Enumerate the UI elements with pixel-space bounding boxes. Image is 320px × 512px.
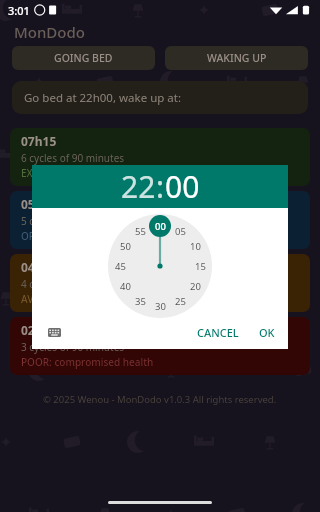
staticText: 10	[190, 240, 201, 253]
staticText: Go bed at 22h00, wake up at:	[24, 90, 181, 106]
staticText: © 2025 Wenou - MonDodo v1.0.3 All rights…	[43, 393, 277, 406]
button[interactable]: 22	[121, 166, 156, 207]
staticText: 35	[135, 295, 146, 308]
staticText: 40	[120, 280, 131, 293]
button[interactable]: WAKING UP	[165, 46, 308, 70]
button[interactable]: 00	[165, 166, 200, 207]
button[interactable]: 00	[108, 214, 212, 318]
staticText: 30	[155, 300, 166, 313]
button[interactable]: 07h15	[10, 128, 310, 186]
staticText: 50	[120, 240, 131, 253]
staticText: 20	[190, 280, 201, 293]
staticText: 4 cycles of 90 minutes	[21, 277, 125, 291]
staticText: 55	[135, 225, 146, 238]
staticText: AVERAGE	[21, 292, 65, 306]
staticText: 3:01	[8, 3, 30, 18]
staticText: 02h45	[21, 322, 57, 338]
staticText: OPTIMAL	[21, 229, 66, 243]
staticText: 05h45	[21, 196, 57, 212]
staticText: 22	[121, 166, 156, 207]
staticText: 25	[175, 295, 186, 308]
button[interactable]: OK	[256, 322, 278, 343]
button[interactable]: Go bed at 22h00, wake up at:	[12, 81, 308, 114]
staticText: CANCEL	[197, 325, 239, 340]
staticText: GOING BED	[54, 51, 113, 65]
staticText: 45	[115, 260, 126, 273]
staticText: 15	[195, 260, 206, 273]
staticText: MonDodo	[14, 22, 85, 42]
staticText: POOR: compromised health	[21, 355, 154, 369]
staticText: 5 cycles of 90 minutes	[21, 214, 125, 228]
staticText: OK	[259, 325, 275, 340]
button[interactable]: GOING BED	[12, 46, 155, 70]
staticText: 00	[155, 220, 166, 233]
staticText: WAKING UP	[207, 51, 267, 65]
button[interactable]: 04h15	[10, 254, 310, 312]
staticText: 6 cycles of 90 minutes	[21, 151, 125, 165]
staticText: EXCELLENT	[21, 166, 75, 180]
button[interactable]: 02h45	[10, 317, 310, 375]
staticText: 00	[165, 166, 200, 207]
button[interactable]: CANCEL	[194, 322, 242, 343]
button[interactable]: 05h45	[10, 191, 310, 249]
staticText: 05	[175, 225, 186, 238]
button[interactable]: Switch to keyboard input	[44, 322, 64, 342]
staticText: 04h15	[21, 259, 57, 275]
staticText: 3 cycles of 90 minutes	[21, 340, 125, 354]
staticText: :	[156, 166, 165, 207]
staticText: 07h15	[21, 133, 57, 149]
